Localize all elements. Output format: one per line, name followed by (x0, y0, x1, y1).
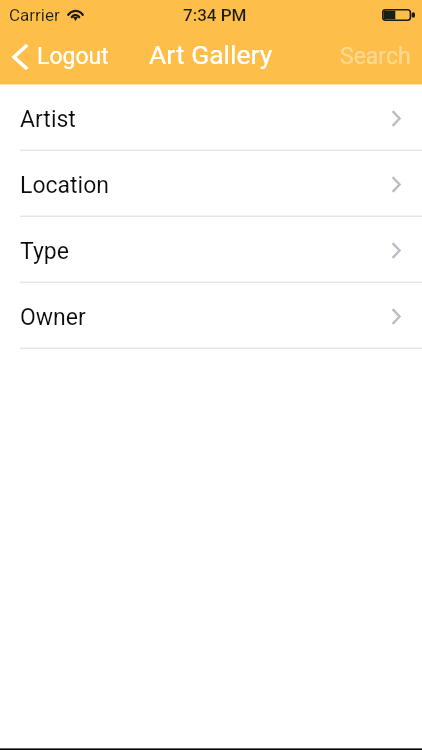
button[interactable]: Location (0, 151, 422, 217)
button[interactable]: Logout (0, 28, 119, 84)
staticText: Logout (37, 43, 109, 70)
staticText: Owner (20, 304, 86, 331)
staticText: Type (20, 238, 69, 265)
staticText: Location (20, 172, 109, 199)
staticText: Art Gallery (149, 39, 273, 70)
staticText: Carrier (9, 5, 60, 25)
other: Battery (382, 9, 415, 21)
staticText: 7:34 PM (183, 5, 247, 25)
button[interactable]: Search (328, 28, 422, 84)
staticText: Search (340, 43, 411, 70)
button[interactable]: Owner (0, 283, 422, 349)
button[interactable]: Type (0, 217, 422, 283)
button[interactable]: Artist (0, 85, 422, 151)
staticText: Artist (20, 106, 76, 133)
